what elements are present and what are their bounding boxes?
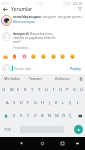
button[interactable]: Voice input bbox=[77, 74, 85, 83]
staticText: R bbox=[24, 87, 27, 92]
button[interactable]: Switch keyboard bbox=[71, 137, 83, 150]
button[interactable]: F bbox=[25, 96, 32, 109]
button[interactable]: Filter bbox=[75, 5, 85, 13]
staticText: Merhaba bbox=[4, 76, 20, 81]
staticText: X bbox=[20, 113, 23, 118]
button[interactable]: Q bbox=[0, 83, 8, 96]
staticText: ?123 bbox=[4, 128, 11, 132]
button[interactable]: O bbox=[57, 83, 64, 96]
button[interactable]: Shift bbox=[0, 109, 11, 122]
staticText: B bbox=[41, 113, 44, 118]
staticText: F bbox=[27, 100, 30, 105]
button[interactable]: Merhaba bbox=[0, 74, 24, 83]
button[interactable]: Emoji reaction bbox=[31, 54, 36, 59]
staticText: G bbox=[34, 100, 37, 105]
button[interactable]: W bbox=[8, 83, 15, 96]
button[interactable]: G bbox=[32, 96, 39, 109]
staticText: C bbox=[27, 113, 30, 118]
button[interactable]: S bbox=[11, 96, 18, 109]
button[interactable]: Comma bbox=[11, 122, 19, 137]
staticText: I bbox=[77, 100, 79, 105]
staticText: J bbox=[49, 100, 51, 105]
button[interactable]: L bbox=[60, 96, 67, 109]
staticText: O bbox=[59, 87, 63, 92]
button[interactable]: M bbox=[53, 109, 60, 122]
button[interactable]: Emoji reaction bbox=[60, 54, 65, 59]
button[interactable]: Emoji reaction bbox=[3, 54, 8, 59]
button[interactable]: H bbox=[39, 96, 46, 109]
staticText: E bbox=[17, 87, 20, 92]
button[interactable]: P bbox=[64, 83, 71, 96]
staticText: rozaeldayzsugsun bbox=[13, 15, 42, 19]
staticText: Q bbox=[2, 87, 6, 92]
staticText: Yorum ekle… bbox=[14, 67, 34, 71]
button[interactable]: N bbox=[46, 109, 53, 122]
staticText: Yorumlar bbox=[11, 6, 33, 13]
staticText: W bbox=[10, 87, 14, 92]
staticText: Ğ bbox=[73, 87, 76, 92]
button[interactable]: Z bbox=[11, 109, 18, 122]
staticText: Tamam bbox=[29, 76, 42, 81]
button[interactable]: Send bbox=[72, 122, 85, 137]
staticText: , bbox=[14, 127, 16, 133]
staticText: A bbox=[6, 100, 9, 105]
staticText: Ç bbox=[69, 113, 72, 118]
staticText: H bbox=[41, 100, 44, 105]
staticText: P bbox=[66, 87, 69, 92]
button[interactable]: Back bbox=[11, 137, 31, 150]
staticText: 22:10 bbox=[73, 1, 83, 6]
button[interactable]: A bbox=[4, 96, 11, 109]
button[interactable]: J bbox=[46, 96, 53, 109]
staticText: Postlashan… bbox=[13, 46, 31, 50]
button[interactable]: E bbox=[15, 83, 22, 96]
button[interactable]: V bbox=[32, 109, 39, 122]
button[interactable]: D bbox=[18, 96, 25, 109]
button[interactable]: Emoji reaction bbox=[12, 54, 17, 59]
button[interactable]: B bbox=[39, 109, 46, 122]
button[interactable]: U bbox=[43, 83, 50, 96]
button[interactable]: T bbox=[29, 83, 36, 96]
button[interactable]: Kullanıcı bbox=[47, 74, 77, 83]
button[interactable]: R bbox=[22, 83, 29, 96]
button[interactable]: Backspace bbox=[74, 109, 85, 122]
button[interactable]: Ş bbox=[67, 96, 74, 109]
button[interactable]: Emoji reaction bbox=[22, 54, 27, 59]
button[interactable]: Ç bbox=[67, 109, 74, 122]
button[interactable]: Emoji reaction bbox=[51, 54, 56, 59]
button[interactable]: Ö bbox=[60, 109, 67, 122]
button[interactable]: ?123 bbox=[0, 122, 14, 137]
staticText: Ö bbox=[62, 113, 66, 118]
button[interactable]: I bbox=[74, 96, 81, 109]
staticText: U bbox=[45, 87, 48, 92]
button[interactable]: Back bbox=[0, 5, 11, 13]
staticText: Kullanıcı bbox=[55, 76, 70, 81]
staticText: Z bbox=[13, 113, 16, 118]
staticText: L bbox=[62, 100, 65, 105]
staticText: D bbox=[20, 100, 23, 105]
staticText: deniperdi bbox=[13, 31, 29, 35]
button[interactable]: Y bbox=[36, 83, 43, 96]
staticText: N bbox=[48, 113, 52, 118]
staticText: V bbox=[34, 113, 37, 118]
button[interactable]: Home bbox=[32, 137, 52, 150]
button[interactable]: Emoji reaction bbox=[41, 54, 46, 59]
staticText: #Gorunmeyan bbox=[13, 20, 35, 24]
button[interactable]: Tamam bbox=[24, 74, 47, 83]
staticText: Bunusload enç bbox=[29, 31, 53, 35]
button[interactable]: I bbox=[50, 83, 57, 96]
staticText: Paylaş bbox=[70, 66, 81, 71]
button[interactable]: Recent apps bbox=[53, 137, 71, 150]
button[interactable]: K bbox=[53, 96, 60, 109]
button[interactable]: X bbox=[18, 109, 25, 122]
staticText: T bbox=[31, 87, 34, 92]
button[interactable]: Emoji reaction bbox=[70, 54, 75, 59]
button[interactable]: Paylaş bbox=[68, 64, 82, 73]
staticText: 'cos guen cos guen guren… bbox=[42, 15, 84, 19]
staticText: comʺ bbox=[13, 39, 21, 43]
staticText: . bbox=[68, 127, 70, 133]
button[interactable]: Ü bbox=[78, 83, 85, 96]
button[interactable]: C bbox=[25, 109, 32, 122]
button[interactable]: Ğ bbox=[71, 83, 78, 96]
